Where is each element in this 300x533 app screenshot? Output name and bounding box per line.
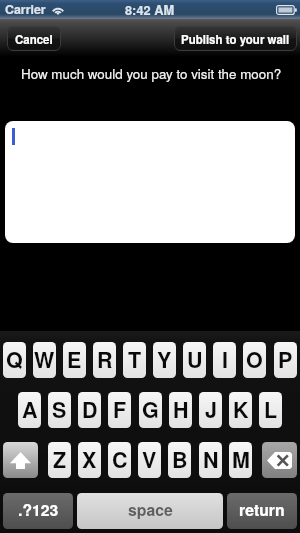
staticText: X — [82, 444, 97, 475]
button[interactable]: B — [168, 442, 191, 478]
button[interactable]: W — [33, 342, 56, 378]
button[interactable]: O — [243, 342, 266, 378]
staticText: H — [173, 394, 189, 425]
staticText: J — [205, 394, 217, 425]
button[interactable]: E — [63, 342, 86, 378]
staticText: F — [113, 394, 127, 425]
button[interactable]: Q — [3, 342, 26, 378]
button[interactable]: return — [227, 493, 297, 529]
button[interactable]: Y — [153, 342, 176, 378]
button[interactable]: H — [169, 392, 192, 428]
staticText: V — [142, 444, 157, 475]
button[interactable]: K — [229, 392, 252, 428]
staticText: R — [97, 344, 113, 375]
button[interactable]: .?123 — [3, 493, 73, 529]
button[interactable] — [5, 121, 295, 243]
button[interactable]: I — [213, 342, 236, 378]
button[interactable]: Backspace — [262, 442, 297, 478]
staticText: C — [112, 444, 128, 475]
staticText: U — [187, 344, 203, 375]
staticText: return — [239, 498, 285, 521]
staticText: I — [222, 344, 228, 375]
button[interactable]: Shift — [3, 442, 38, 478]
staticText: G — [142, 394, 159, 425]
staticText: How much would you pay to visit the moon… — [21, 64, 282, 83]
button[interactable]: Z — [48, 442, 71, 478]
button[interactable]: Publish to your wall — [174, 26, 297, 51]
staticText: A — [22, 394, 38, 425]
button[interactable]: M — [229, 442, 252, 478]
button[interactable]: T — [123, 342, 146, 378]
button[interactable]: D — [78, 392, 101, 428]
button[interactable]: N — [199, 442, 222, 478]
button[interactable]: X — [78, 442, 101, 478]
button[interactable]: C — [108, 442, 131, 478]
staticText: S — [52, 394, 67, 425]
staticText: T — [128, 344, 142, 375]
staticText: space — [128, 498, 173, 521]
staticText: Cancel — [15, 31, 53, 47]
staticText: O — [246, 344, 263, 375]
staticText: Publish to your wall — [181, 31, 290, 47]
button[interactable]: space — [77, 493, 223, 529]
button[interactable]: V — [138, 442, 161, 478]
staticText: Y — [157, 344, 172, 375]
staticText: Z — [53, 444, 67, 475]
staticText: L — [264, 394, 278, 425]
button[interactable]: S — [48, 392, 71, 428]
button[interactable]: J — [199, 392, 222, 428]
button[interactable]: L — [259, 392, 282, 428]
button[interactable]: F — [108, 392, 131, 428]
staticText: B — [172, 444, 188, 475]
staticText: Q — [6, 344, 23, 375]
button[interactable]: Cancel — [7, 26, 61, 51]
staticText: K — [233, 394, 249, 425]
staticText: 8:42 AM — [125, 1, 175, 19]
staticText: .?123 — [18, 498, 59, 521]
staticText: Carrier — [5, 0, 46, 18]
staticText: M — [232, 444, 250, 475]
staticText: P — [278, 344, 293, 375]
staticText: E — [67, 344, 82, 375]
staticText: N — [203, 444, 219, 475]
button[interactable]: U — [183, 342, 206, 378]
button[interactable]: G — [139, 392, 162, 428]
button[interactable]: A — [18, 392, 41, 428]
staticText: D — [82, 394, 98, 425]
staticText: W — [34, 344, 55, 375]
button[interactable]: P — [274, 342, 297, 378]
button[interactable]: R — [93, 342, 116, 378]
